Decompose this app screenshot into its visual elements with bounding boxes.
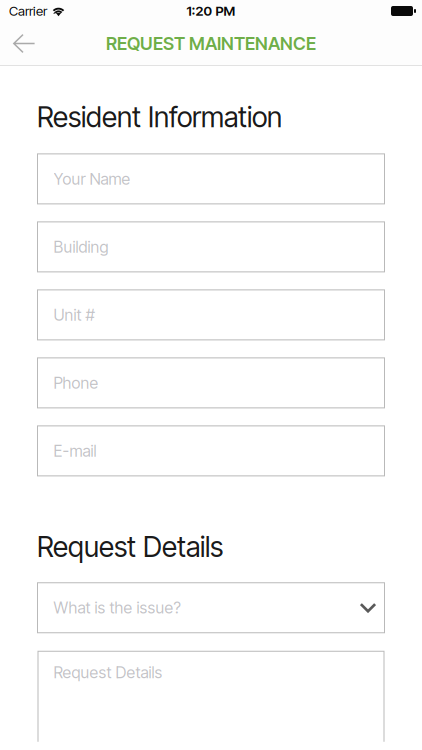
button[interactable]: Request Details bbox=[37, 651, 384, 742]
staticText: 1:20 PM bbox=[186, 3, 235, 19]
staticText: Building bbox=[53, 237, 108, 257]
button[interactable]: Phone bbox=[37, 358, 384, 408]
button[interactable]: Unit # bbox=[37, 290, 384, 340]
staticText: Unit # bbox=[53, 305, 94, 325]
button[interactable]: E-mail bbox=[37, 426, 384, 476]
staticText: Phone bbox=[53, 373, 98, 393]
staticText: What is the issue? bbox=[53, 598, 180, 617]
button[interactable]: Back bbox=[0, 22, 53, 65]
button[interactable]: Your Name bbox=[37, 154, 384, 204]
staticText: Request Details bbox=[37, 530, 223, 564]
staticText: Resident Information bbox=[37, 100, 282, 134]
staticText: Carrier bbox=[9, 3, 47, 19]
staticText: Your Name bbox=[53, 169, 130, 189]
staticText: REQUEST MAINTENANCE bbox=[106, 33, 316, 54]
staticText: E-mail bbox=[53, 441, 96, 461]
button[interactable]: What is the issue? bbox=[37, 583, 384, 633]
button[interactable]: Building bbox=[37, 222, 384, 272]
staticText: Request Details bbox=[53, 663, 162, 682]
